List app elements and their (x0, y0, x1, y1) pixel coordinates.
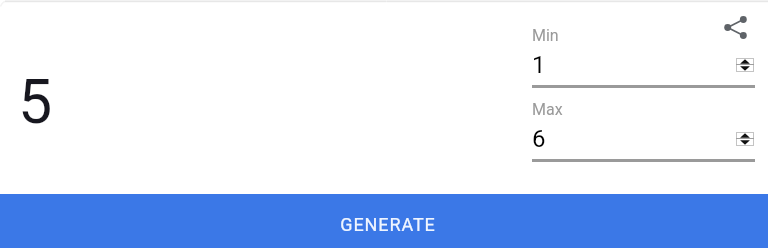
button[interactable]: GENERATE (0, 194, 768, 248)
button[interactable]: Max (532, 100, 755, 162)
staticText: 6 (532, 125, 737, 153)
button[interactable]: Change Min value (736, 58, 754, 72)
button[interactable]: Min (532, 26, 755, 88)
staticText: 1 (532, 51, 737, 79)
staticText: 5 (18, 66, 53, 137)
button[interactable]: Share result (713, 5, 757, 49)
staticText: Max (532, 100, 563, 119)
staticText: Min (532, 26, 559, 45)
button[interactable]: Change Max value (736, 132, 754, 146)
staticText: GENERATE (340, 214, 436, 235)
